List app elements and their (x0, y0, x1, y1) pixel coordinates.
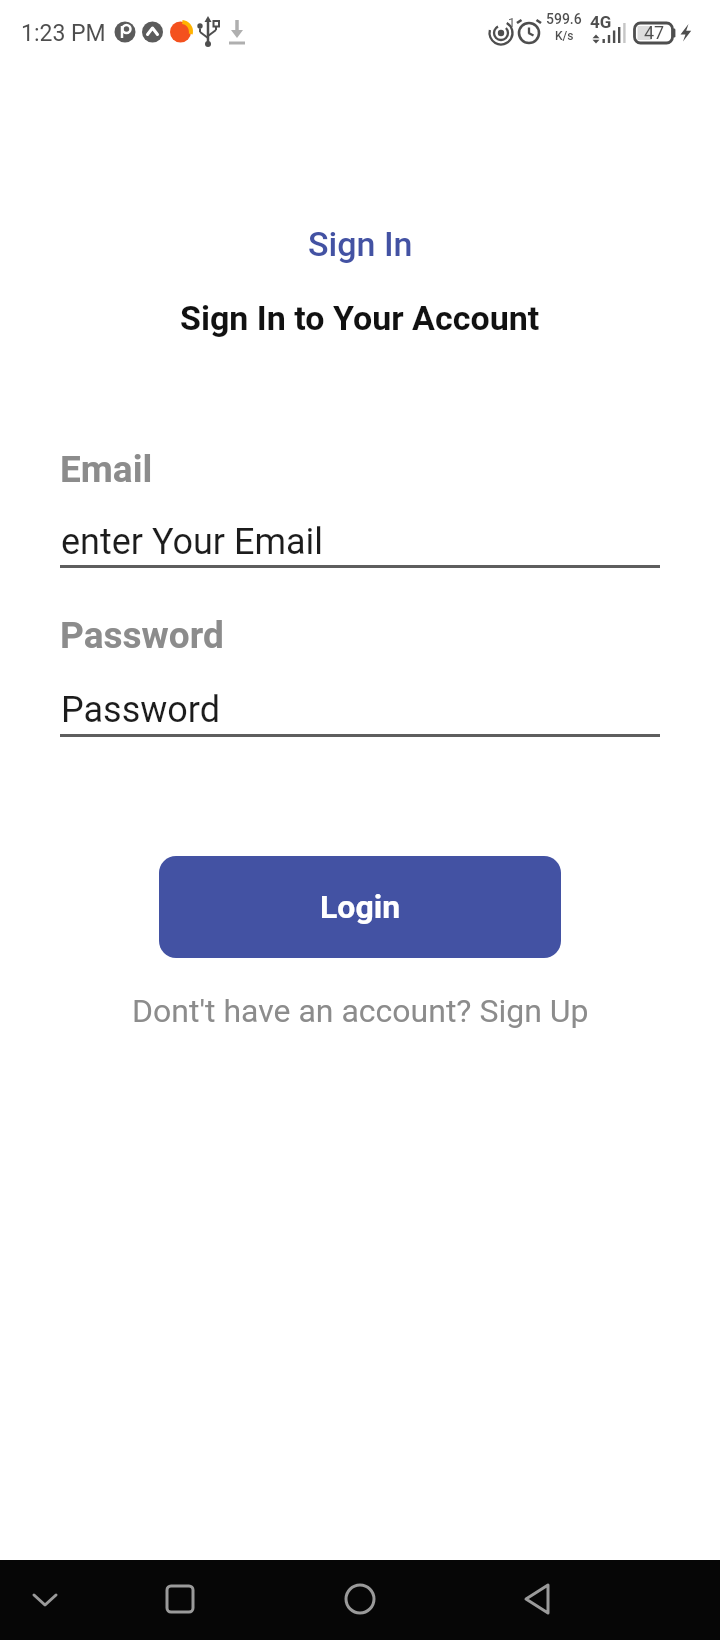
staticText: 1:23 PM (21, 20, 106, 47)
staticText: enter Your Email (61, 521, 324, 563)
staticText: Dont't have an account? Sign Up (132, 992, 589, 1030)
button[interactable] (510, 1570, 570, 1630)
staticText: 599.6 (546, 11, 582, 27)
staticText: K/s (555, 29, 574, 43)
button[interactable]: Login (159, 856, 561, 958)
staticText: Sign In (308, 224, 413, 264)
staticText: 47 (644, 22, 665, 43)
button[interactable] (150, 1570, 210, 1630)
button[interactable] (330, 1570, 390, 1630)
staticText: 1 (508, 15, 516, 30)
button[interactable] (60, 505, 660, 568)
button[interactable]: Dont't have an account? Sign Up (132, 981, 589, 1041)
button[interactable] (60, 674, 660, 737)
staticText: Sign In to Your Account (180, 298, 540, 338)
button[interactable] (25, 1580, 65, 1620)
staticText: Password (61, 689, 221, 731)
staticText: 4G (590, 12, 612, 32)
staticText: Password (60, 614, 224, 657)
staticText: Login (320, 888, 401, 926)
staticText: Email (60, 448, 153, 491)
